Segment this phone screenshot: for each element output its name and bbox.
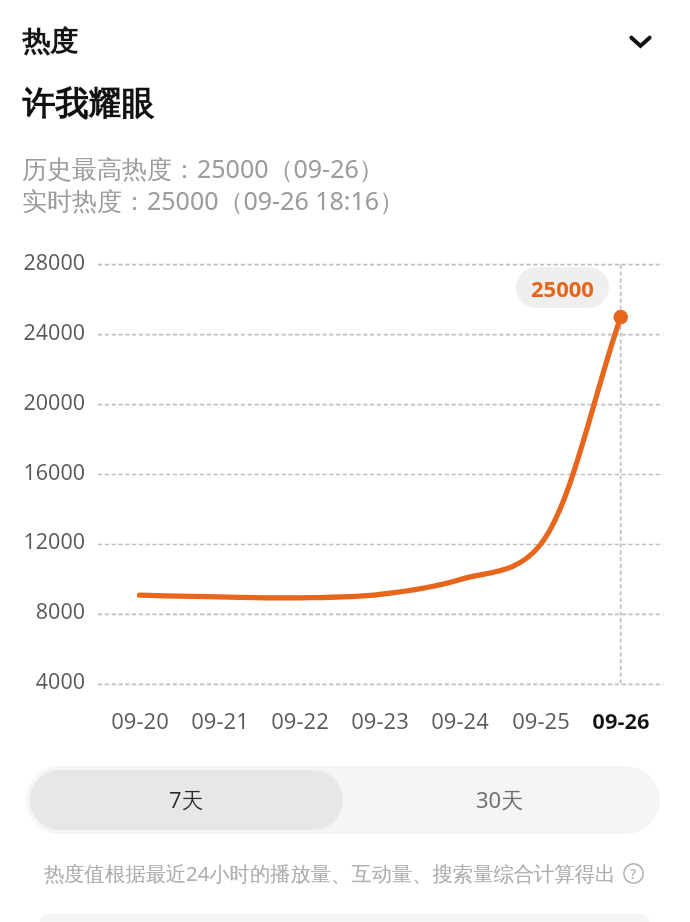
staticText: 热度 <box>22 24 78 59</box>
staticText: 实时热度：25000（09-26 18:16） <box>22 183 405 217</box>
button[interactable]: Collapse <box>612 14 669 71</box>
staticText: 09-24 <box>415 705 505 735</box>
staticText: 历史最高热度：25000（09-26） <box>22 151 384 185</box>
staticText: 09-20 <box>95 705 185 735</box>
button[interactable]: 7天 <box>30 770 343 830</box>
button[interactable]: 30天 <box>343 770 656 830</box>
staticText: 09-26 <box>576 705 666 735</box>
staticText: 12000 <box>0 526 85 555</box>
staticText: 许我耀眼 <box>22 83 154 125</box>
staticText: 09-22 <box>255 705 345 735</box>
staticText: 20000 <box>0 387 85 416</box>
button[interactable]: Help <box>623 863 644 884</box>
staticText: 24000 <box>0 317 85 346</box>
staticText: 09-21 <box>175 705 265 735</box>
staticText: 热度值根据最近24小时的播放量、互动量、搜索量综合计算得出 <box>44 859 616 887</box>
staticText: 4000 <box>0 666 85 695</box>
staticText: 30天 <box>476 784 524 814</box>
staticText: ? <box>630 864 637 883</box>
staticText: 16000 <box>0 457 85 486</box>
staticText: 8000 <box>0 596 85 625</box>
staticText: 09-23 <box>335 705 425 735</box>
staticText: 28000 <box>0 247 85 276</box>
staticText: 25000 <box>531 273 594 303</box>
staticText: 7天 <box>169 784 204 814</box>
staticText: 09-25 <box>496 705 586 735</box>
